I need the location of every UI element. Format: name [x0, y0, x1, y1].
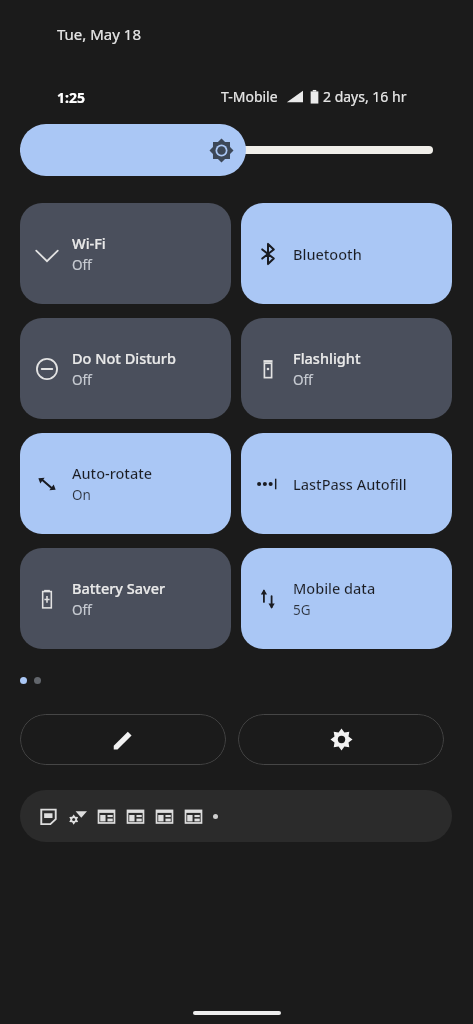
staticText: Off: [72, 256, 92, 274]
staticText: Wi-Fi: [72, 233, 106, 253]
button[interactable]: Wi-Fi: [20, 203, 231, 304]
staticText: Do Not Disturb: [72, 348, 176, 368]
button[interactable]: Mobile data: [241, 548, 452, 649]
button[interactable]: Bluetooth: [241, 203, 452, 304]
staticText: Mobile data: [293, 578, 376, 598]
button[interactable]: Battery Saver: [20, 548, 231, 649]
button[interactable]: Auto-rotate: [20, 433, 231, 534]
staticText: LastPass Autofill: [293, 474, 407, 494]
staticText: Auto-rotate: [72, 463, 153, 483]
staticText: Off: [72, 371, 92, 389]
button[interactable]: LastPass Autofill: [241, 433, 452, 534]
staticText: Bluetooth: [293, 244, 362, 264]
button[interactable]: Settings: [238, 714, 444, 765]
staticText: T-Mobile: [221, 87, 278, 106]
button[interactable]: Notifications: [20, 790, 452, 842]
button[interactable]: Flashlight: [241, 318, 452, 419]
staticText: Off: [72, 601, 92, 619]
staticText: Tue, May 18: [57, 24, 141, 44]
staticText: 1:25: [57, 88, 85, 107]
staticText: Battery Saver: [72, 578, 166, 598]
button[interactable]: Edit tiles: [20, 714, 226, 765]
staticText: Flashlight: [293, 348, 361, 368]
staticText: 5G: [293, 601, 311, 619]
button[interactable]: Do Not Disturb: [20, 318, 231, 419]
staticText: 2 days, 16 hr: [323, 87, 407, 106]
button[interactable]: Brightness: [20, 124, 433, 176]
staticText: Off: [293, 371, 313, 389]
staticText: On: [72, 486, 91, 504]
